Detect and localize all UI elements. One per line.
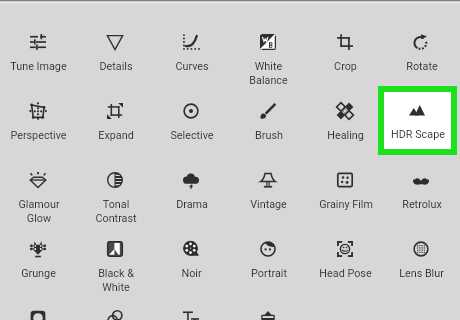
staticText: Rotate bbox=[406, 60, 438, 73]
button[interactable]: Curves bbox=[153, 7, 230, 76]
staticText: White Balance bbox=[249, 60, 288, 87]
button[interactable]: Tune Image bbox=[0, 7, 77, 76]
staticText: Healing bbox=[327, 129, 364, 142]
staticText: Black & White bbox=[98, 267, 134, 294]
button[interactable]: Healing bbox=[307, 76, 384, 145]
staticText: Grainy Film bbox=[319, 198, 373, 211]
staticText: HDR Scape bbox=[395, 129, 449, 142]
button[interactable]: HDR Scape bbox=[383, 76, 460, 145]
staticText: Vintage bbox=[250, 198, 287, 211]
button[interactable]: Tonal Contrast bbox=[77, 145, 154, 214]
button[interactable]: Glamour Glow bbox=[0, 145, 77, 214]
button[interactable]: Vignette bbox=[0, 283, 77, 320]
button[interactable]: Double Exposure bbox=[77, 283, 154, 320]
button[interactable]: Frames bbox=[230, 283, 307, 320]
staticText: Drama bbox=[176, 198, 208, 211]
staticText: Expand bbox=[98, 129, 134, 142]
button[interactable]: Retrolux bbox=[383, 145, 460, 214]
staticText: Retrolux bbox=[402, 198, 442, 211]
staticText: Glamour Glow bbox=[18, 198, 60, 225]
button[interactable]: Selective bbox=[153, 76, 230, 145]
staticText: Tune Image bbox=[10, 60, 67, 73]
staticText: Head Pose bbox=[319, 267, 372, 280]
staticText: Crop bbox=[334, 60, 357, 73]
staticText: Lens Blur bbox=[399, 267, 444, 280]
button[interactable]: Rotate bbox=[383, 7, 460, 76]
staticText: Tonal Contrast bbox=[95, 198, 137, 225]
staticText: Selective bbox=[170, 129, 214, 142]
button[interactable]: Drama bbox=[153, 145, 230, 214]
staticText: Noir bbox=[181, 267, 202, 280]
button[interactable]: Portrait bbox=[230, 214, 307, 283]
button[interactable]: Brush bbox=[230, 76, 307, 145]
button[interactable]: Perspective bbox=[0, 76, 77, 145]
staticText: HDR Scape bbox=[391, 128, 445, 141]
staticText: Perspective bbox=[10, 129, 67, 142]
button[interactable]: HDR Scape bbox=[384, 92, 451, 149]
button[interactable]: Noir bbox=[153, 214, 230, 283]
button[interactable]: Details bbox=[77, 7, 154, 76]
staticText: Grunge bbox=[21, 267, 56, 280]
button[interactable]: Lens Blur bbox=[383, 214, 460, 283]
button[interactable]: Head Pose bbox=[307, 214, 384, 283]
button[interactable]: Grunge bbox=[0, 214, 77, 283]
button[interactable]: Expand bbox=[77, 76, 154, 145]
button[interactable]: Black & White bbox=[77, 214, 154, 283]
staticText: Curves bbox=[175, 60, 209, 73]
staticText: Brush bbox=[255, 129, 283, 142]
button[interactable]: Grainy Film bbox=[307, 145, 384, 214]
button[interactable]: Vintage bbox=[230, 145, 307, 214]
staticText: Portrait bbox=[251, 267, 287, 280]
staticText: Details bbox=[99, 60, 133, 73]
button[interactable]: Text bbox=[153, 283, 230, 320]
button[interactable]: Crop bbox=[307, 7, 384, 76]
button[interactable]: White Balance bbox=[230, 7, 307, 76]
